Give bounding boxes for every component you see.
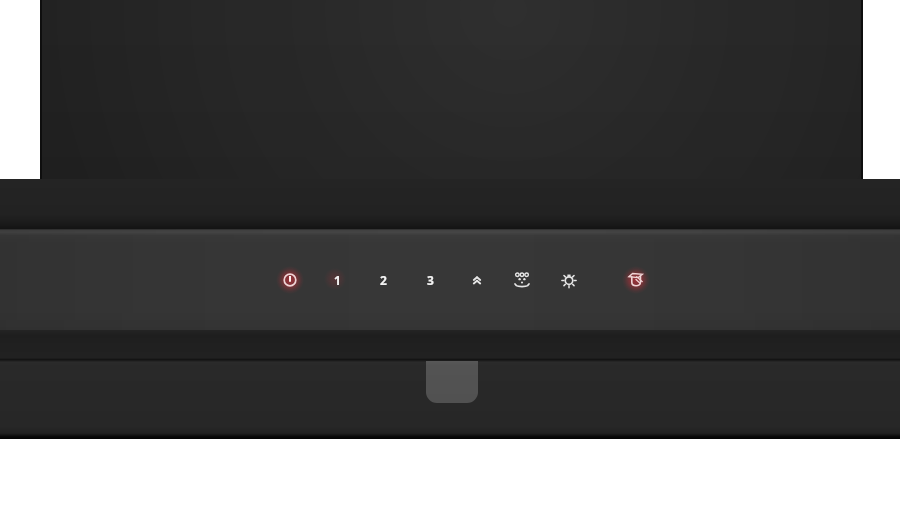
button[interactable]: Handle: [426, 361, 478, 403]
button[interactable]: Light: [547, 258, 591, 302]
button[interactable]: Automatic mode: [500, 258, 544, 302]
button[interactable]: Power: [268, 258, 312, 302]
staticText: 2: [380, 272, 387, 288]
staticText: 3: [427, 272, 434, 288]
button[interactable]: 2: [361, 258, 405, 302]
button[interactable]: Boost: [455, 258, 499, 302]
button[interactable]: Filter: [614, 258, 658, 302]
staticText: 1: [334, 272, 341, 288]
button[interactable]: 1: [315, 258, 359, 302]
button[interactable]: 3: [408, 258, 452, 302]
